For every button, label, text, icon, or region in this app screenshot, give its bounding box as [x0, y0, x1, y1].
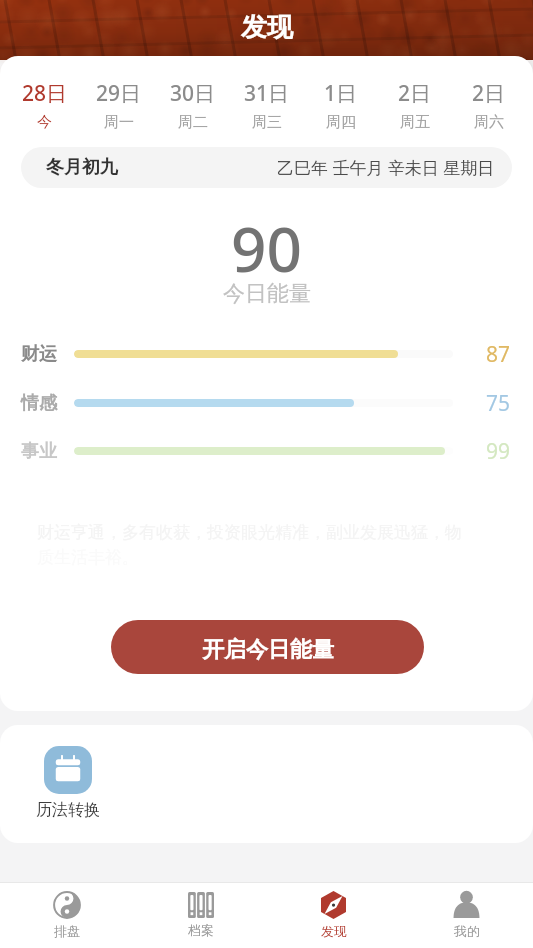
- staticText: 历法转换: [36, 800, 100, 820]
- button[interactable]: 发现: [267, 882, 400, 948]
- staticText: 发现: [241, 11, 293, 44]
- button[interactable]: 1日: [304, 79, 378, 132]
- staticText: 2日: [398, 79, 432, 108]
- staticText: 周四: [326, 113, 356, 132]
- staticText: 31日: [244, 79, 290, 108]
- button[interactable]: 30日: [156, 79, 230, 132]
- staticText: 财运: [21, 343, 57, 366]
- staticText: 冬月初九: [46, 156, 118, 179]
- button[interactable]: 29日: [82, 79, 156, 132]
- staticText: 我的: [454, 923, 480, 939]
- button[interactable]: 28日: [7, 79, 82, 132]
- button[interactable]: 档案: [134, 882, 267, 948]
- button[interactable]: 2日: [452, 79, 526, 132]
- staticText: 发现: [321, 923, 347, 939]
- staticText: 周六: [474, 113, 504, 132]
- staticText: 周五: [400, 113, 430, 132]
- staticText: 1日: [324, 79, 358, 108]
- staticText: 29日: [96, 79, 142, 108]
- staticText: 周二: [178, 113, 208, 132]
- button[interactable]: 2日: [378, 79, 452, 132]
- staticText: 87: [486, 340, 531, 369]
- staticText: 排盘: [54, 923, 80, 939]
- staticText: 28日: [22, 79, 68, 108]
- staticText: 财运亨通，多有收获，投资眼光精准，副业发展迅猛，物: [37, 522, 462, 543]
- staticText: 2日: [472, 79, 506, 108]
- staticText: 周三: [252, 113, 282, 132]
- button[interactable]: 历法转换: [36, 746, 100, 820]
- staticText: 今日能量: [223, 280, 311, 308]
- button[interactable]: 31日: [230, 79, 304, 132]
- staticText: 30日: [170, 79, 216, 108]
- staticText: 情感: [21, 392, 57, 415]
- button[interactable]: 排盘: [0, 882, 134, 948]
- staticText: 乙巳年 壬午月 辛未日 星期日: [277, 156, 495, 179]
- staticText: 90: [231, 206, 302, 290]
- staticText: 事业: [21, 440, 57, 463]
- button[interactable]: 我的: [400, 882, 533, 948]
- staticText: 75: [486, 389, 531, 418]
- staticText: 周一: [104, 113, 134, 132]
- staticText: 99: [486, 437, 531, 466]
- staticText: 开启今日能量: [202, 636, 334, 664]
- staticText: 档案: [188, 922, 214, 938]
- button[interactable]: 开启今日能量: [111, 620, 424, 674]
- staticText: 今: [37, 113, 52, 132]
